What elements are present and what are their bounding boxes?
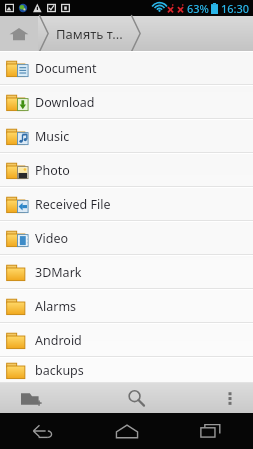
staticText: Video <box>35 230 69 247</box>
staticText: Music <box>35 128 70 145</box>
button[interactable]: Search <box>64 383 207 413</box>
staticText: Android <box>35 332 82 349</box>
button[interactable]: Received File <box>0 187 253 221</box>
staticText: 16:30 <box>221 1 250 16</box>
staticText: backups <box>35 362 84 379</box>
staticText: Document <box>35 60 97 77</box>
staticText: Photo <box>35 162 70 179</box>
button[interactable]: Android <box>0 323 253 357</box>
button[interactable]: Alarms <box>0 289 253 323</box>
button[interactable]: More options <box>207 383 253 413</box>
button[interactable]: Music <box>0 119 253 153</box>
staticText: 63% <box>187 1 209 16</box>
button[interactable]: 3DMark <box>0 255 253 289</box>
button[interactable]: Document <box>0 51 253 85</box>
button[interactable]: Photo <box>0 153 253 187</box>
other: Battery <box>211 3 218 14</box>
other: Wi-Fi <box>153 2 166 14</box>
button[interactable]: Back <box>0 413 85 449</box>
button[interactable]: Home <box>0 16 38 51</box>
button[interactable]: New folder <box>0 383 64 413</box>
staticText: Alarms <box>35 298 77 315</box>
staticText: Received File <box>35 196 111 213</box>
staticText: Память т... <box>56 25 123 43</box>
button[interactable]: Video <box>0 221 253 255</box>
staticText: Download <box>35 94 95 111</box>
button[interactable]: backups <box>0 357 253 383</box>
staticText: 3DMark <box>35 264 82 281</box>
button[interactable]: Home <box>85 413 169 449</box>
button[interactable]: Recents <box>169 413 253 449</box>
button[interactable]: Download <box>0 85 253 119</box>
button[interactable]: Память т... <box>49 16 130 51</box>
